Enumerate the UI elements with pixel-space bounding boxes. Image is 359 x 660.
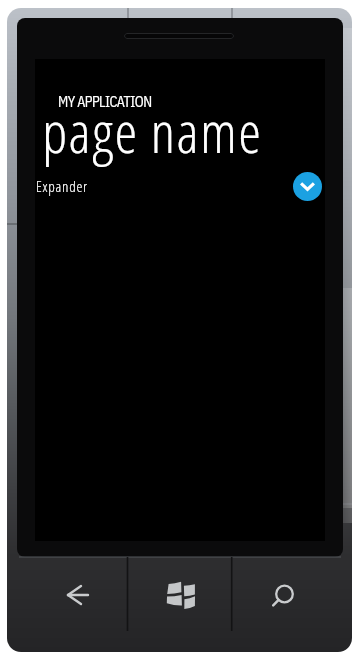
button[interactable] xyxy=(293,172,322,201)
button[interactable] xyxy=(128,558,232,632)
button[interactable] xyxy=(17,558,127,632)
staticText: MY APPLICATION xyxy=(58,93,152,111)
button[interactable] xyxy=(232,558,343,632)
staticText: page name xyxy=(42,91,263,170)
staticText: Expander xyxy=(36,176,88,196)
button[interactable] xyxy=(35,169,325,205)
